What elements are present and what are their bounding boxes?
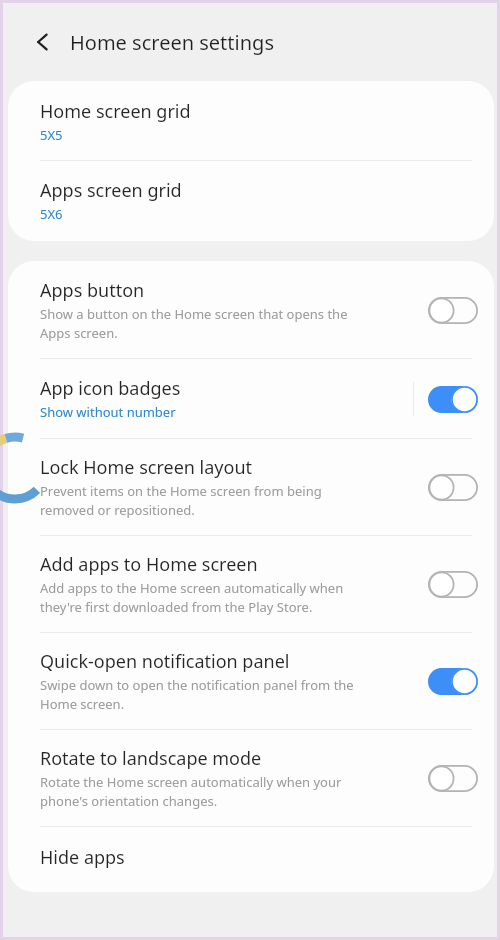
button[interactable]: Rotate to landscape mode xyxy=(8,730,494,826)
button[interactable]: Toggle off xyxy=(426,470,480,504)
button[interactable]: Apps screen grid xyxy=(8,161,494,241)
staticText: 5X6 xyxy=(40,205,63,223)
button[interactable]: Hide apps xyxy=(8,827,494,892)
button[interactable]: Back xyxy=(25,24,61,60)
button[interactable]: Toggle off xyxy=(426,293,480,327)
button[interactable]: Quick-open notification panel xyxy=(8,633,494,729)
staticText: App icon badges xyxy=(40,376,181,401)
button[interactable]: App icon badges xyxy=(8,359,494,438)
staticText: Quick-open notification panel xyxy=(40,649,290,674)
button[interactable]: Add apps to Home screen xyxy=(8,536,494,632)
button[interactable]: Toggle on xyxy=(426,664,480,698)
button[interactable]: Toggle off xyxy=(426,567,480,601)
staticText: Hide apps xyxy=(40,845,125,870)
staticText: Home screen settings xyxy=(70,29,274,56)
staticText: Add apps to the Home screen automaticall… xyxy=(40,579,344,616)
staticText: 5X5 xyxy=(40,126,63,144)
button[interactable]: Toggle off xyxy=(426,761,480,795)
staticText: Swipe down to open the notification pane… xyxy=(40,676,354,713)
button[interactable]: Toggle on xyxy=(426,382,480,416)
button[interactable]: Lock Home screen layout xyxy=(8,439,494,535)
staticText: Apps button xyxy=(40,278,145,303)
button[interactable]: Home screen grid xyxy=(8,81,494,160)
staticText: Lock Home screen layout xyxy=(40,455,253,480)
staticText: Show without number xyxy=(40,403,176,421)
staticText: Home screen grid xyxy=(40,99,191,124)
staticText: Rotate the Home screen automatically whe… xyxy=(40,773,342,810)
staticText: Add apps to Home screen xyxy=(40,552,258,577)
button[interactable]: Apps button xyxy=(8,261,494,358)
staticText: Prevent items on the Home screen from be… xyxy=(40,482,322,519)
staticText: Apps screen grid xyxy=(40,178,182,203)
staticText: Rotate to landscape mode xyxy=(40,746,262,771)
staticText: Show a button on the Home screen that op… xyxy=(40,305,348,342)
